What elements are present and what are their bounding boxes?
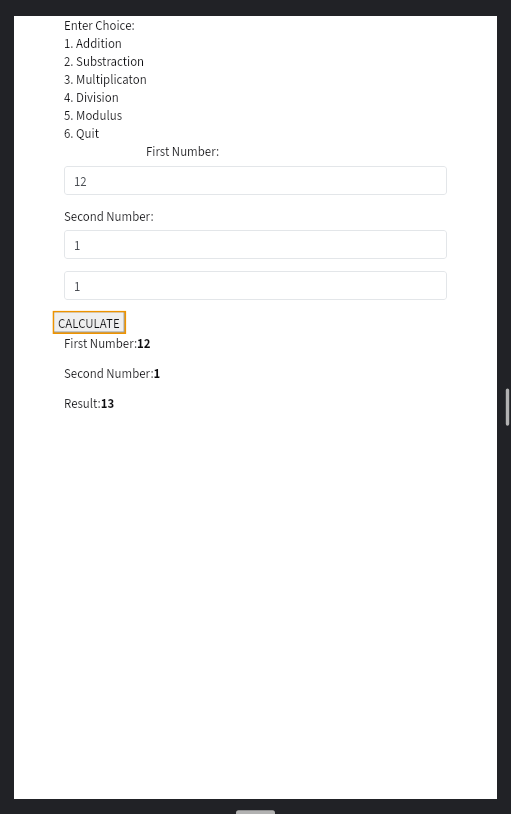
staticText: 4. Division [64,89,119,107]
staticText: First Number: [146,143,220,161]
staticText: 1 [74,237,81,255]
staticText: Enter Choice: [64,17,135,35]
staticText: Second Number:1 [64,365,161,383]
staticText: Second Number: [64,208,154,226]
button[interactable]: First number input [64,166,447,195]
staticText: 3. Multiplicaton [64,71,147,89]
staticText: 1. Addition [64,35,122,53]
staticText: 12 [74,173,87,191]
staticText: 2. Substraction [64,53,145,71]
staticText: 6. Quit [64,125,100,143]
staticText: First Number:12 [64,335,151,353]
staticText: 5. Modulus [64,107,122,125]
button[interactable]: Second number input [64,230,447,259]
button[interactable]: Third number input [64,271,447,300]
staticText: 1 [74,278,81,296]
staticText: Result:13 [64,395,115,413]
staticText: CALCULATE [58,315,120,333]
button[interactable]: Calculate [53,311,126,334]
